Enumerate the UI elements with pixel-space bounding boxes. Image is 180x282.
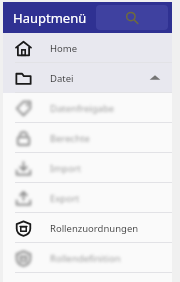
button[interactable]: Berechte xyxy=(3,123,172,153)
staticText: Datei xyxy=(50,72,148,85)
button[interactable]: Home xyxy=(3,33,172,63)
button[interactable]: Rollenzuordnungen xyxy=(3,213,172,243)
staticText: Hauptmenü xyxy=(13,9,87,27)
button[interactable]: Suche xyxy=(96,5,168,30)
button[interactable]: Export xyxy=(3,183,172,213)
button[interactable]: Datenfreigabe xyxy=(3,93,172,123)
staticText: Home xyxy=(50,42,172,55)
staticText: Rollendefinition xyxy=(50,252,172,265)
staticText: Import xyxy=(50,162,172,175)
staticText: Datenfreigabe xyxy=(50,102,172,115)
staticText: Export xyxy=(50,192,172,205)
staticText: Berechte xyxy=(50,132,172,145)
button[interactable]: Datei xyxy=(3,63,172,93)
button[interactable]: Import xyxy=(3,153,172,183)
staticText: Rollenzuordnungen xyxy=(50,222,172,235)
button[interactable]: Rollendefinition xyxy=(3,243,172,273)
